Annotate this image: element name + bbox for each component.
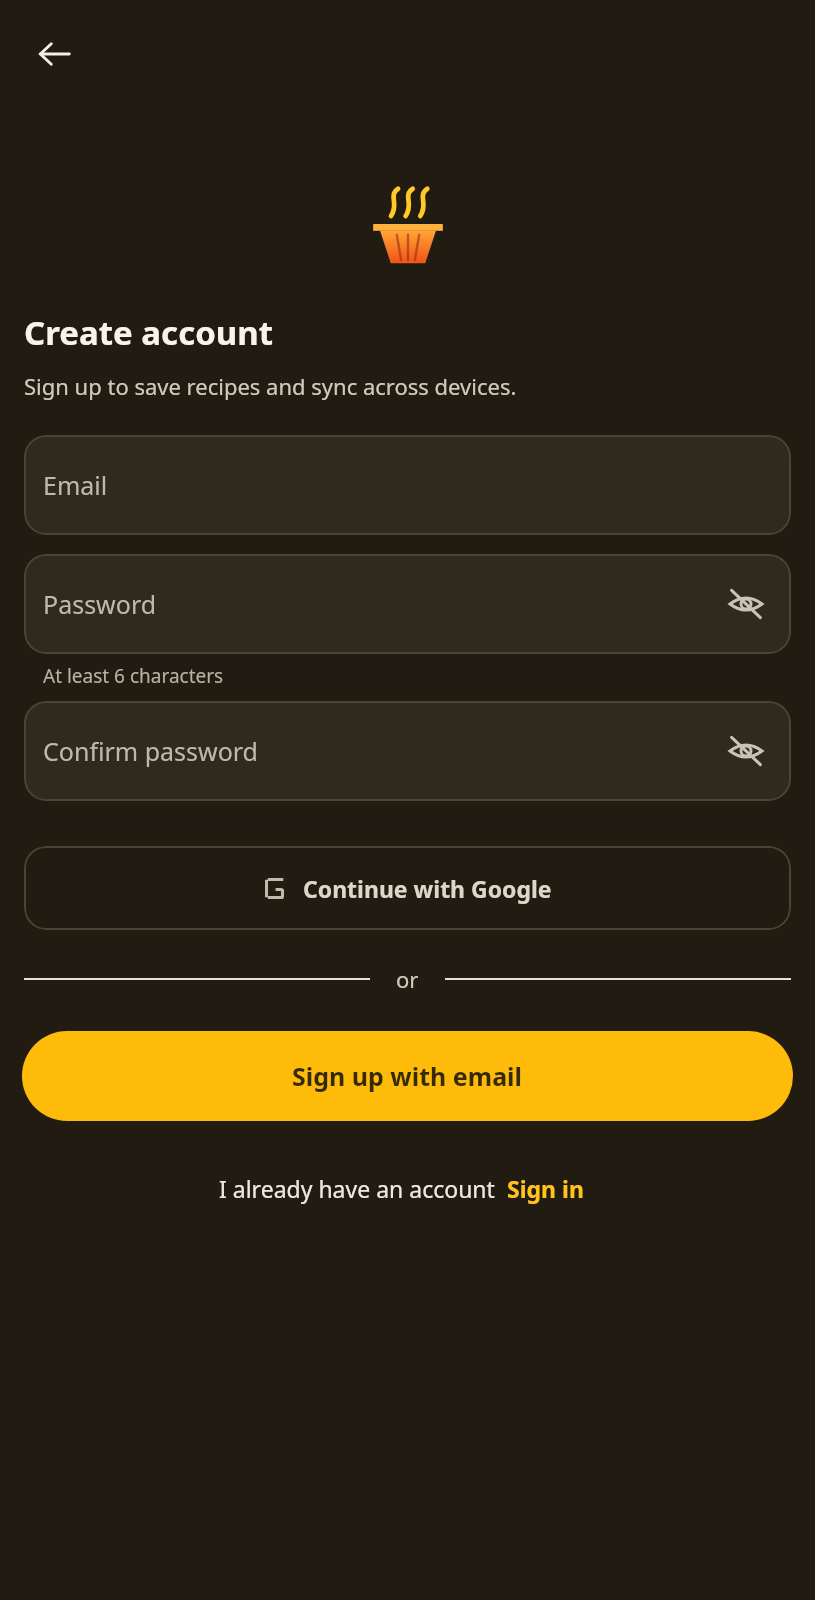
staticText: Confirm password (43, 734, 720, 768)
staticText: or (396, 964, 419, 994)
button[interactable]: Toggle password visibility (720, 578, 772, 630)
button[interactable]: Sign in (495, 1169, 596, 1208)
button[interactable]: Password (24, 554, 791, 654)
button[interactable]: Email (24, 435, 791, 535)
button[interactable]: Continue with Google (24, 846, 791, 930)
button[interactable]: Back (22, 22, 86, 86)
staticText: Sign in (507, 1173, 584, 1204)
staticText: Password (43, 587, 720, 621)
button[interactable]: Sign up with email (22, 1031, 793, 1121)
staticText: Create account (24, 310, 274, 355)
button[interactable]: Toggle password visibility (720, 725, 772, 777)
button[interactable]: Confirm password (24, 701, 791, 801)
staticText: Sign up to save recipes and sync across … (24, 371, 517, 401)
staticText: Sign up with email (292, 1059, 523, 1093)
staticText: I already have an account (219, 1173, 495, 1204)
staticText: Continue with Google (303, 873, 552, 904)
staticText: Email (43, 468, 772, 502)
staticText: At least 6 characters (43, 663, 224, 689)
